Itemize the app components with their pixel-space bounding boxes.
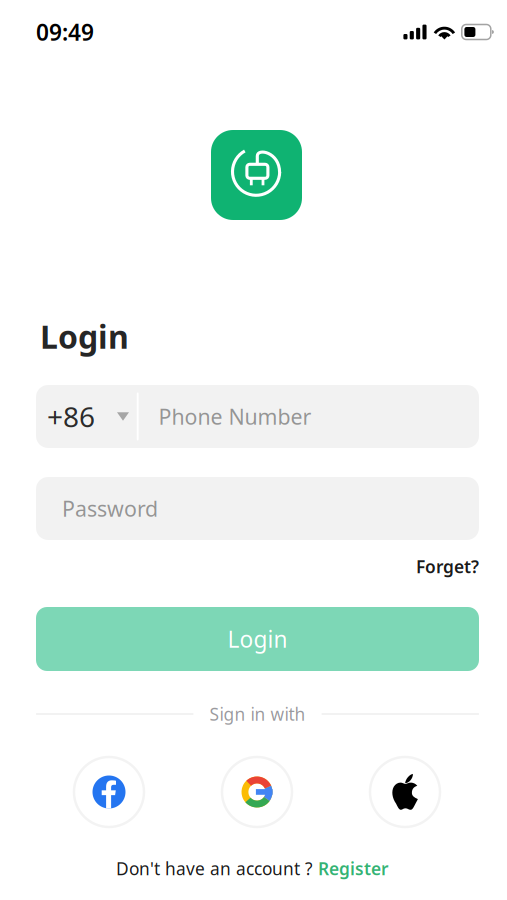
staticText: 09:49	[36, 17, 94, 47]
button[interactable]: Forget?	[416, 555, 479, 578]
button[interactable]: Login	[36, 607, 479, 671]
button[interactable]: Password	[36, 477, 479, 540]
staticText: Register	[318, 857, 389, 880]
button[interactable]: Phone Number	[138, 385, 479, 448]
staticText: Forget?	[416, 555, 479, 578]
staticText: Password	[62, 494, 158, 523]
button[interactable]: Sign in with Google	[222, 757, 292, 827]
staticText: Don't have an account ?	[116, 857, 318, 880]
button[interactable]: Register	[318, 857, 389, 880]
button[interactable]: Sign in with Facebook	[74, 757, 144, 827]
staticText: Sign in with	[209, 702, 305, 725]
staticText: +86	[47, 398, 95, 435]
button[interactable]: Country code +86	[36, 385, 150, 448]
staticText: Login	[227, 624, 287, 654]
staticText: Login	[40, 315, 129, 357]
button[interactable]: Sign in with Apple	[370, 757, 440, 827]
staticText: Phone Number	[158, 402, 311, 431]
